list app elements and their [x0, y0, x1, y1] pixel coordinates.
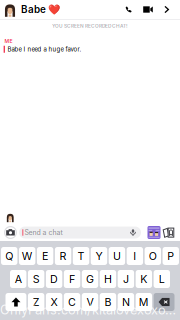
- button[interactable]: Shift: [5, 293, 26, 311]
- button[interactable]: F: [64, 270, 80, 288]
- staticText: A: [15, 272, 22, 285]
- button[interactable]: B: [100, 293, 116, 311]
- button[interactable]: Friend profile: [158, 0, 174, 19]
- staticText: Z: [33, 295, 40, 308]
- staticText: J: [123, 272, 129, 285]
- staticText: M: [139, 295, 149, 308]
- staticText: ME: [4, 38, 12, 44]
- staticText: N: [122, 295, 130, 308]
- staticText: OnlyFans.com/kitalovexoxovip: [0, 302, 180, 317]
- staticText: X: [51, 295, 58, 308]
- staticText: O: [149, 249, 157, 262]
- staticText: R: [60, 249, 67, 262]
- staticText: P: [167, 249, 174, 262]
- staticText: S: [33, 272, 40, 285]
- staticText: W: [22, 249, 33, 262]
- staticText: K: [140, 272, 147, 285]
- staticText: B: [104, 295, 111, 308]
- button[interactable]: Y: [91, 247, 107, 265]
- staticText: YOU SCREEN RECORDED CHAT!: [52, 23, 128, 29]
- staticText: L: [159, 272, 165, 285]
- button[interactable]: S: [28, 270, 44, 288]
- button[interactable]: Delete: [154, 293, 174, 311]
- button[interactable]: Bitmoji stickers: [147, 225, 161, 239]
- button[interactable]: V: [82, 293, 98, 311]
- button[interactable]: O: [145, 247, 161, 265]
- button[interactable]: U: [109, 247, 125, 265]
- button[interactable]: M: [136, 293, 152, 311]
- staticText: Babe I need a huge favor.: [7, 46, 81, 53]
- button[interactable]: Stickers: [161, 225, 176, 239]
- button[interactable]: J: [118, 270, 134, 288]
- button[interactable]: L: [154, 270, 170, 288]
- staticText: V: [86, 295, 93, 308]
- button[interactable]: R: [55, 247, 71, 265]
- staticText: H: [104, 272, 112, 285]
- staticText: U: [113, 249, 121, 262]
- button[interactable]: E: [37, 247, 53, 265]
- button[interactable]: Q: [1, 247, 17, 265]
- button[interactable]: Z: [28, 293, 44, 311]
- button[interactable]: K: [136, 270, 152, 288]
- button[interactable]: Video call: [137, 0, 158, 19]
- staticText: C: [68, 295, 76, 308]
- button[interactable]: N: [118, 293, 134, 311]
- staticText: D: [50, 272, 58, 285]
- button[interactable]: I: [127, 247, 143, 265]
- button[interactable]: W: [19, 247, 35, 265]
- button[interactable]: G: [82, 270, 98, 288]
- button[interactable]: H: [100, 270, 116, 288]
- button[interactable]: T: [73, 247, 89, 265]
- button[interactable]: Babe ❤️: [3, 2, 60, 16]
- staticText: I: [133, 249, 136, 262]
- staticText: Babe ❤️: [21, 3, 60, 15]
- button[interactable]: P: [163, 247, 179, 265]
- staticText: Y: [95, 249, 102, 262]
- button[interactable]: D: [46, 270, 62, 288]
- staticText: Send a chat: [24, 228, 62, 237]
- staticText: T: [77, 249, 84, 262]
- staticText: E: [42, 249, 48, 262]
- button[interactable]: X: [46, 293, 62, 311]
- button[interactable]: Camera: [2, 225, 19, 239]
- staticText: G: [86, 272, 94, 285]
- button[interactable]: C: [64, 293, 80, 311]
- staticText: Q: [5, 249, 13, 262]
- button[interactable]: A: [10, 270, 26, 288]
- staticText: F: [69, 272, 75, 285]
- button[interactable]: Audio call: [119, 0, 137, 19]
